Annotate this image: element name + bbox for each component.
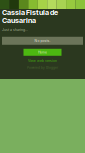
staticText: Cassia Fistula de [2, 8, 58, 17]
button[interactable]: Home [23, 49, 61, 56]
staticText: Powered by Blogger [27, 66, 58, 69]
button[interactable]: View web version [2, 59, 83, 63]
staticText: No posts. [34, 39, 50, 43]
staticText: Home [38, 50, 47, 54]
staticText: View web version [28, 59, 57, 63]
staticText: Causarina [2, 16, 36, 25]
staticText: Just a sharing... [2, 28, 28, 32]
